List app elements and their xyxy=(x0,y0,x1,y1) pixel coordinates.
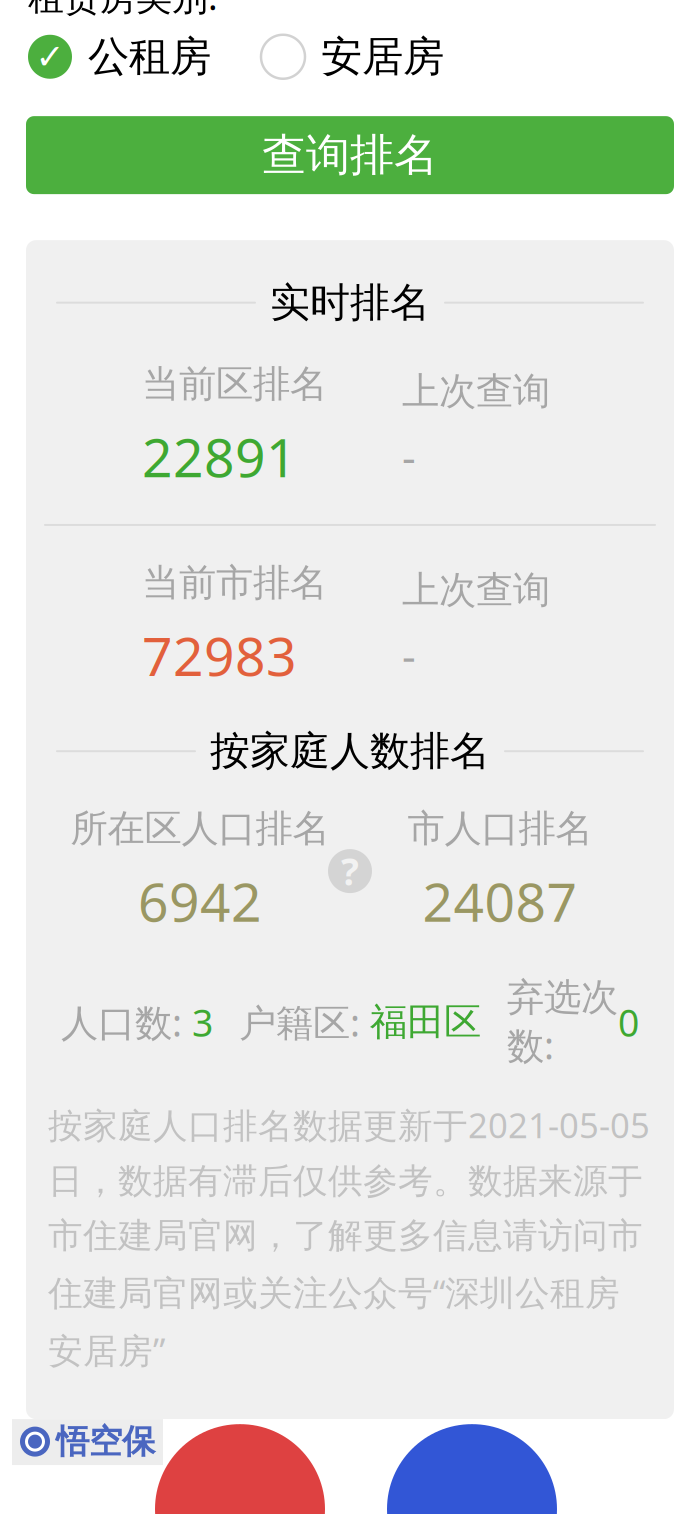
staticText: 户籍区: xyxy=(239,997,370,1047)
staticText: 0 xyxy=(618,997,639,1047)
staticText: ✓ xyxy=(35,37,64,76)
staticText: 人口数: xyxy=(61,997,192,1047)
staticText: 公租房 xyxy=(88,31,211,82)
staticText: 弃选次数: xyxy=(507,974,618,1070)
staticText: 上次查询 xyxy=(402,368,550,414)
staticText: ? xyxy=(341,846,359,896)
button[interactable]: 查询排名 xyxy=(26,116,674,194)
staticText: 市人口排名 xyxy=(407,806,592,852)
staticText: 当前区排名 xyxy=(142,361,327,407)
staticText: 福田区 xyxy=(370,999,481,1045)
staticText: - xyxy=(402,627,416,684)
staticText: 实时排名 xyxy=(270,278,430,327)
button[interactable]: Help about family size ranking xyxy=(328,846,372,896)
staticText: 当前市排名 xyxy=(142,560,327,606)
button[interactable]: ✓ xyxy=(28,21,211,92)
staticText: 22891 xyxy=(142,421,297,492)
staticText: 按家庭人数排名 xyxy=(210,727,490,776)
button[interactable]: 查看 xyxy=(155,1424,325,1514)
staticText: 上次查询 xyxy=(402,567,550,613)
staticText: 6942 xyxy=(138,866,262,936)
staticText: 安居房 xyxy=(321,31,444,82)
staticText: - xyxy=(402,428,416,485)
button[interactable]: 安居房 xyxy=(261,21,444,92)
staticText: 悟空保 xyxy=(56,1421,155,1462)
staticText: 3 xyxy=(192,997,213,1047)
staticText: 按家庭人口排名数据更新于2021-05-05日，数据有滞后仅供参考。数据来源于市… xyxy=(48,1102,650,1373)
staticText: 所在区人口排名 xyxy=(70,806,329,852)
staticText: 查询排名 xyxy=(262,128,438,182)
staticText: 租赁房类别: xyxy=(28,0,218,20)
button[interactable]: 确认 xyxy=(387,1424,557,1514)
staticText: 72983 xyxy=(142,620,297,691)
staticText: 24087 xyxy=(422,866,577,936)
